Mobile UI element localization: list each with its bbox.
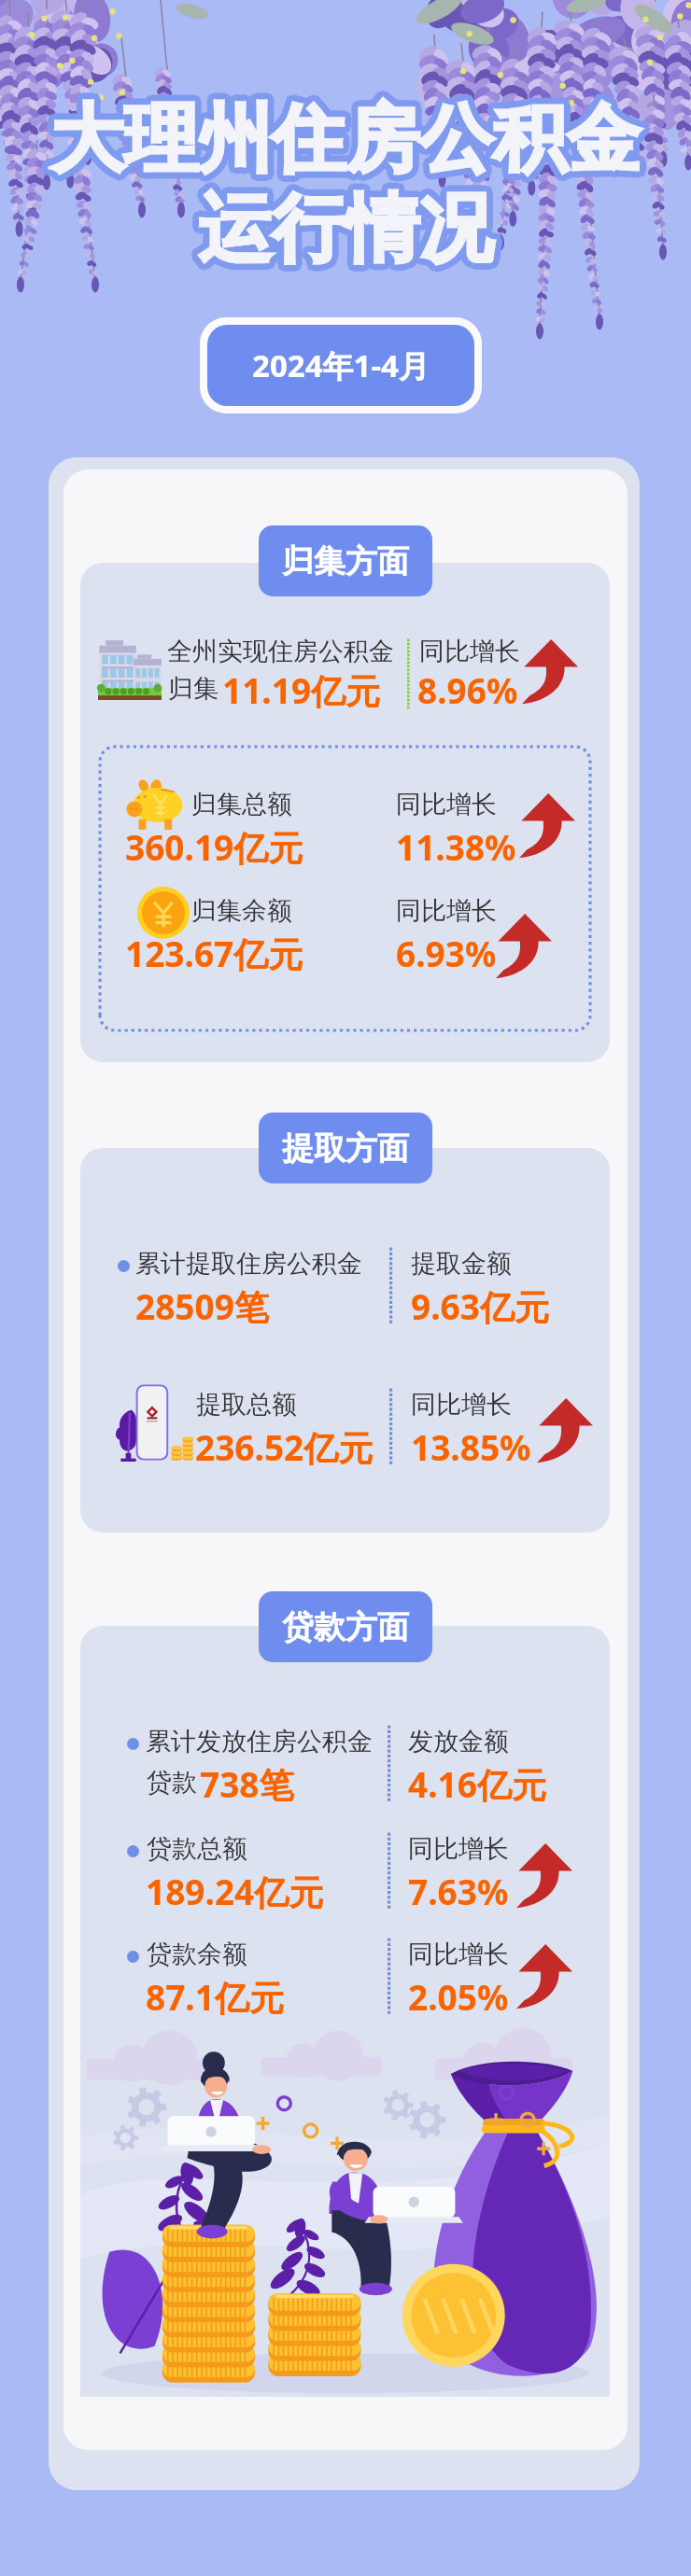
- button[interactable]: 累计提取住房公积金 28509笔，提取金额 9.63亿元: [93, 1241, 598, 1327]
- staticText: 运行情况: [191, 183, 487, 276]
- button[interactable]: 归集余额 123.67亿元，同比增长 6.93%: [93, 885, 598, 974]
- staticText: 运行情况: [195, 189, 490, 282]
- staticText: 归集: [168, 673, 219, 705]
- staticText: 同比增长: [411, 1389, 512, 1421]
- staticText: 大理州住房公积金: [56, 96, 646, 189]
- staticText: 236.52亿元: [195, 1423, 374, 1471]
- staticText: 同比增长: [419, 636, 520, 667]
- staticText: 大理州住房公积金: [50, 87, 641, 180]
- staticText: 贷款: [147, 1767, 197, 1799]
- staticText: 运行情况: [198, 189, 493, 283]
- staticText: 累计提取住房公积金: [135, 1248, 362, 1280]
- staticText: 大理州住房公积金: [57, 93, 647, 187]
- button[interactable]: 住房公积金归集: [98, 640, 162, 700]
- staticText: 大理州住房公积金: [48, 88, 638, 181]
- staticText: 87.1亿元: [146, 1973, 284, 2021]
- staticText: 运行情况: [198, 176, 493, 270]
- staticText: 大理州住房公积金: [45, 96, 635, 189]
- button[interactable]: 贷款余额 87.1亿元，同比增长 2.05%: [93, 1933, 598, 2019]
- staticText: 提取方面: [282, 1128, 409, 1169]
- staticText: 运行情况: [203, 178, 498, 272]
- staticText: 11.19亿元: [222, 666, 381, 714]
- staticText: 8.96%: [417, 666, 518, 713]
- other: 同比增长: [537, 1398, 593, 1463]
- button[interactable]: 提取总额 236.52亿元，同比增长 13.85%: [93, 1383, 598, 1473]
- staticText: 大理州住房公积金: [55, 89, 645, 182]
- button[interactable]: 归集方面: [259, 525, 432, 596]
- staticText: 同比增长: [396, 789, 497, 820]
- staticText: 运行情况: [204, 186, 499, 279]
- other: 同比增长: [522, 639, 578, 705]
- staticText: 运行情况: [198, 183, 493, 276]
- button[interactable]: 提取方面: [259, 1113, 432, 1183]
- staticText: 归集总额: [191, 789, 292, 820]
- staticText: 28509笔: [135, 1282, 269, 1330]
- staticText: 7.63%: [408, 1868, 509, 1914]
- staticText: 全州实现住房公积金: [167, 636, 394, 667]
- staticText: 大理州住房公积金: [44, 93, 634, 187]
- staticText: 发放金额: [408, 1726, 509, 1757]
- staticText: 运行情况: [192, 186, 487, 279]
- staticText: 大理州住房公积金: [55, 98, 645, 191]
- staticText: 同比增长: [408, 1833, 509, 1865]
- staticText: 4.16亿元: [408, 1760, 546, 1808]
- button[interactable]: 2024年1-4月: [207, 325, 474, 406]
- staticText: 提取金额: [411, 1248, 512, 1280]
- button[interactable]: 贷款总额 189.24亿元，同比增长 7.63%: [93, 1827, 598, 1913]
- button[interactable]: 提取总额: [106, 1383, 195, 1473]
- staticText: 13.85%: [411, 1423, 531, 1470]
- button[interactable]: 累计发放住房公积金贷款 738笔，发放金额 4.16亿元: [93, 1719, 598, 1807]
- staticText: 贷款方面: [282, 1607, 409, 1647]
- staticText: 运行情况: [204, 183, 500, 276]
- staticText: 123.67亿元: [125, 930, 303, 977]
- button[interactable]: 归集总额: [125, 778, 187, 831]
- staticText: 大理州住房公积金: [50, 93, 641, 187]
- staticText: 大理州住房公积金: [53, 99, 643, 192]
- staticText: 大理州住房公积金: [46, 98, 636, 191]
- staticText: 运行情况: [192, 180, 487, 273]
- staticText: 同比增长: [408, 1939, 509, 1970]
- staticText: 189.24亿元: [146, 1868, 324, 1915]
- staticText: 2024年1-4月: [252, 344, 430, 386]
- button[interactable]: 全州实现住房公积金归集 11.19亿元，同比增长 8.96%: [93, 631, 598, 715]
- staticText: 同比增长: [396, 895, 497, 927]
- staticText: 运行情况: [204, 180, 499, 273]
- staticText: 大理州住房公积金: [56, 91, 646, 184]
- button[interactable]: 归集总额 360.19亿元，同比增长 11.38%: [93, 778, 598, 868]
- staticText: 运行情况: [203, 188, 498, 281]
- staticText: 运行情况: [201, 177, 496, 271]
- other: 同比增长: [516, 1843, 572, 1909]
- button[interactable]: 贷款方面: [259, 1591, 432, 1662]
- button[interactable]: 归集余额: [137, 887, 190, 939]
- staticText: 9.63亿元: [411, 1282, 549, 1330]
- staticText: 大理州住房公积金: [48, 99, 638, 192]
- staticText: 贷款余额: [147, 1939, 247, 1970]
- other: 同比增长: [519, 793, 575, 859]
- staticText: 大理州住房公积金: [45, 91, 635, 184]
- staticText: 运行情况: [195, 177, 490, 271]
- staticText: 738笔: [200, 1760, 294, 1808]
- staticText: 大理州住房公积金: [53, 88, 643, 181]
- staticText: 6.93%: [396, 930, 497, 976]
- staticText: 11.38%: [396, 823, 516, 870]
- staticText: 累计发放住房公积金: [146, 1726, 373, 1757]
- other: 同比增长: [516, 1944, 572, 2009]
- staticText: 归集方面: [282, 541, 409, 581]
- staticText: 大理州住房公积金: [50, 100, 641, 193]
- staticText: 360.19亿元: [125, 823, 303, 871]
- staticText: 大理州住房公积金: [46, 89, 636, 182]
- other: 同比增长: [496, 914, 552, 979]
- staticText: 归集余额: [191, 895, 292, 927]
- staticText: 2.05%: [408, 1973, 509, 2020]
- staticText: 贷款总额: [147, 1833, 247, 1865]
- staticText: 运行情况: [201, 189, 496, 282]
- staticText: 运行情况: [193, 178, 488, 272]
- staticText: 提取总额: [196, 1389, 297, 1421]
- staticText: 运行情况: [193, 188, 488, 281]
